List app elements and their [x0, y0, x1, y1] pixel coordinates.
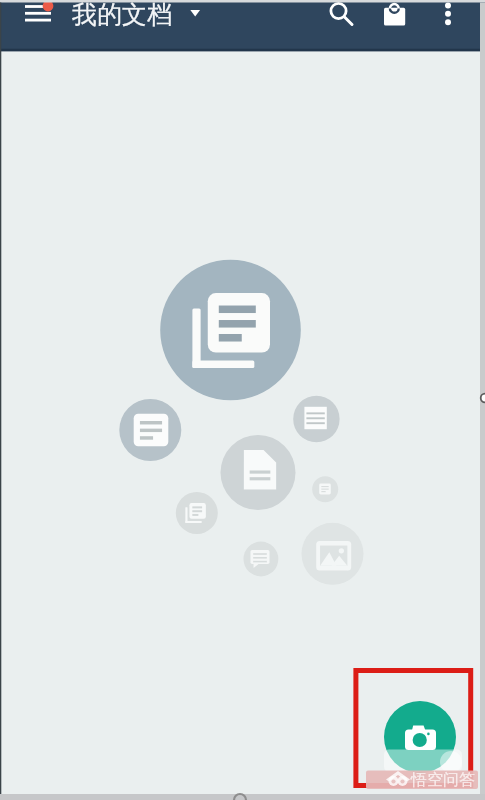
button[interactable]: More options [427, 0, 469, 49]
button[interactable]: 我的文档 [60, 0, 220, 49]
button[interactable]: Navigation menu [16, 0, 60, 49]
staticText: 悟空问答 [411, 770, 475, 790]
button[interactable]: Store [373, 0, 417, 49]
button[interactable]: Search [317, 0, 361, 49]
button[interactable]: Take photo [384, 701, 456, 773]
staticText: 我的文档 [72, 0, 172, 30]
